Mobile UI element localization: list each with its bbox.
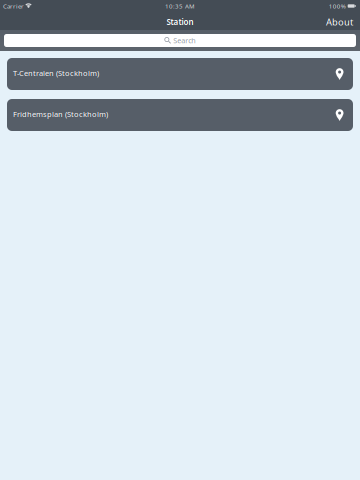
staticText: Station [166, 17, 193, 27]
staticText: About [326, 16, 353, 28]
staticText: Search [173, 36, 195, 45]
staticText: Fridhemsplan (Stockholm) [13, 109, 108, 119]
staticText: Carrier [3, 2, 24, 10]
staticText: 10:35 AM [165, 2, 195, 10]
staticText: T-Centralen (Stockholm) [13, 68, 99, 78]
button[interactable]: Search [4, 34, 356, 47]
staticText: 100% [329, 2, 346, 10]
button[interactable]: T-Centralen (Stockholm) [7, 58, 353, 90]
button[interactable]: About [319, 14, 360, 30]
button[interactable]: Fridhemsplan (Stockholm) [7, 99, 353, 131]
